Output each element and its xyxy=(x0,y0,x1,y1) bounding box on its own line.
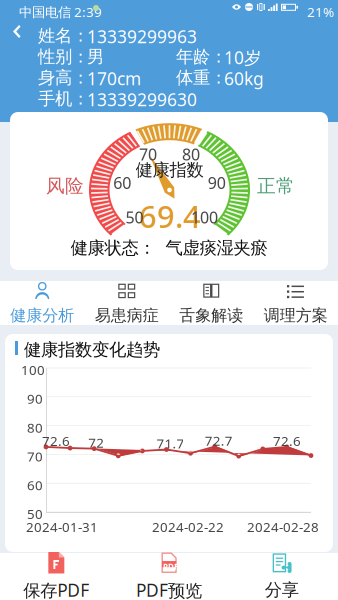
staticText: 正常 xyxy=(257,174,295,197)
staticText: 72 xyxy=(88,434,104,451)
button[interactable]: 易患病症 xyxy=(84,281,169,325)
staticText: 90 xyxy=(27,390,43,407)
staticText: 调理方案 xyxy=(264,306,328,325)
button[interactable]: 舌象解读 xyxy=(169,281,253,325)
staticText: 71.7 xyxy=(156,434,184,452)
staticText: 70 xyxy=(139,144,157,165)
staticText: 100 xyxy=(191,207,218,228)
button[interactable]: 健康分析 xyxy=(0,281,84,325)
staticText: 中国电信 2:39 xyxy=(19,3,102,21)
staticText: 50 xyxy=(125,207,143,228)
staticText: 2024-02-28 xyxy=(247,518,319,536)
staticText: 72.6 xyxy=(273,432,301,450)
button[interactable]: Back xyxy=(10,22,32,44)
staticText: 保存PDF xyxy=(23,578,89,600)
staticText: 手机： xyxy=(38,88,89,109)
button[interactable]: 保存PDF xyxy=(0,551,113,600)
staticText: 风险 xyxy=(46,174,84,197)
staticText: PDF xyxy=(163,561,178,572)
staticText: 分享 xyxy=(265,579,299,600)
staticText: 60kg xyxy=(224,67,264,90)
staticText: 姓名： xyxy=(38,25,89,46)
staticText: 健康指数 xyxy=(135,159,203,181)
button[interactable]: 分享 xyxy=(225,552,338,600)
staticText: 50 xyxy=(27,505,43,523)
staticText: 72.6 xyxy=(42,432,70,450)
staticText: 170cm xyxy=(87,67,141,90)
staticText: 2024-02-22 xyxy=(152,518,224,536)
staticText: 性别： xyxy=(38,46,89,67)
staticText: 身高： xyxy=(38,67,89,88)
staticText: 易患病症 xyxy=(95,306,159,325)
staticText: 21% xyxy=(307,3,334,21)
staticText: 70 xyxy=(27,447,43,465)
staticText: 健康状态： 气虚痰湿夹瘀 xyxy=(70,237,267,259)
staticText: 体重： xyxy=(176,67,227,88)
staticText: 2024-01-31 xyxy=(26,518,98,536)
staticText: 健康指数变化趋势 xyxy=(24,339,160,360)
staticText: 80 xyxy=(27,419,43,436)
staticText: 60 xyxy=(27,476,43,494)
staticText: 60 xyxy=(113,172,131,193)
staticText: 年龄： xyxy=(176,46,227,67)
staticText: 10岁 xyxy=(224,46,261,69)
staticText: PDF预览 xyxy=(136,578,202,600)
staticText: 80 xyxy=(182,144,200,165)
button[interactable]: PDF xyxy=(113,551,225,600)
staticText: 男 xyxy=(87,46,104,67)
staticText: 90 xyxy=(208,172,226,193)
staticText: 舌象解读 xyxy=(179,306,243,325)
staticText: 13339299963 xyxy=(87,25,197,48)
staticText: 13339299630 xyxy=(87,88,197,111)
staticText: 69.4 xyxy=(139,196,201,236)
button[interactable]: 调理方案 xyxy=(253,281,338,325)
staticText: 100 xyxy=(21,361,45,379)
staticText: 健康分析 xyxy=(10,306,74,325)
staticText: 72.7 xyxy=(205,432,233,449)
